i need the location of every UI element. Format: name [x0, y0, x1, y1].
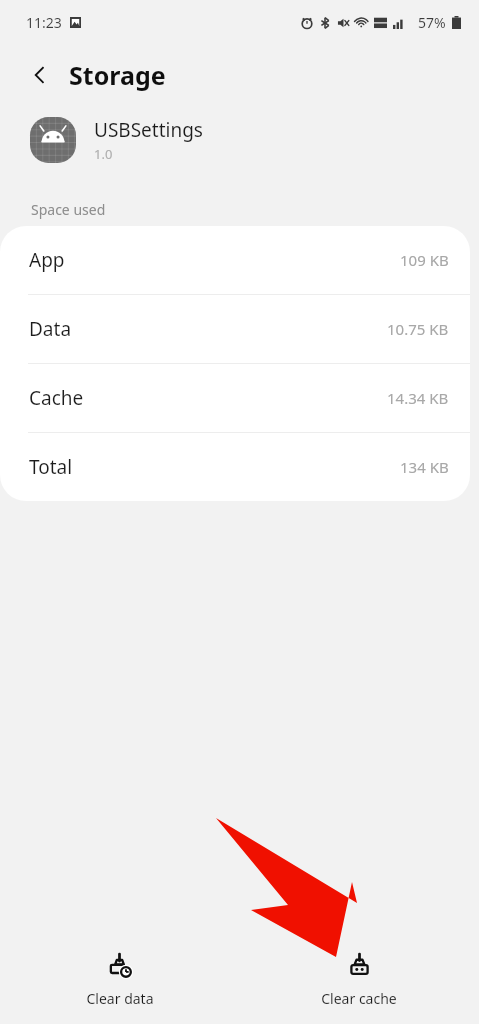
staticText: 14.34 KB [387, 388, 449, 408]
staticText: 57% [418, 13, 446, 32]
button[interactable]: Clear data [0, 945, 239, 1016]
button[interactable]: Back [20, 55, 60, 95]
staticText: Cache [29, 385, 84, 411]
staticText: Total [29, 454, 73, 480]
staticText: Space used [31, 200, 106, 219]
staticText: Data [29, 316, 72, 342]
staticText: Storage [69, 58, 166, 92]
staticText: 109 KB [400, 250, 449, 270]
button[interactable]: Clear cache [239, 945, 479, 1016]
button[interactable]: Cache [0, 364, 470, 432]
staticText: App [29, 247, 65, 273]
staticText: 134 KB [400, 457, 449, 477]
button[interactable]: Data [0, 295, 470, 363]
button[interactable]: App [0, 226, 470, 294]
staticText: 10.75 KB [387, 319, 449, 339]
staticText: Clear data [86, 989, 154, 1008]
staticText: 11:23 [26, 13, 62, 32]
staticText: Clear cache [321, 989, 397, 1008]
staticText: 1.0 [94, 145, 113, 163]
staticText: USBSettings [94, 117, 203, 143]
button[interactable]: Total [0, 433, 470, 501]
